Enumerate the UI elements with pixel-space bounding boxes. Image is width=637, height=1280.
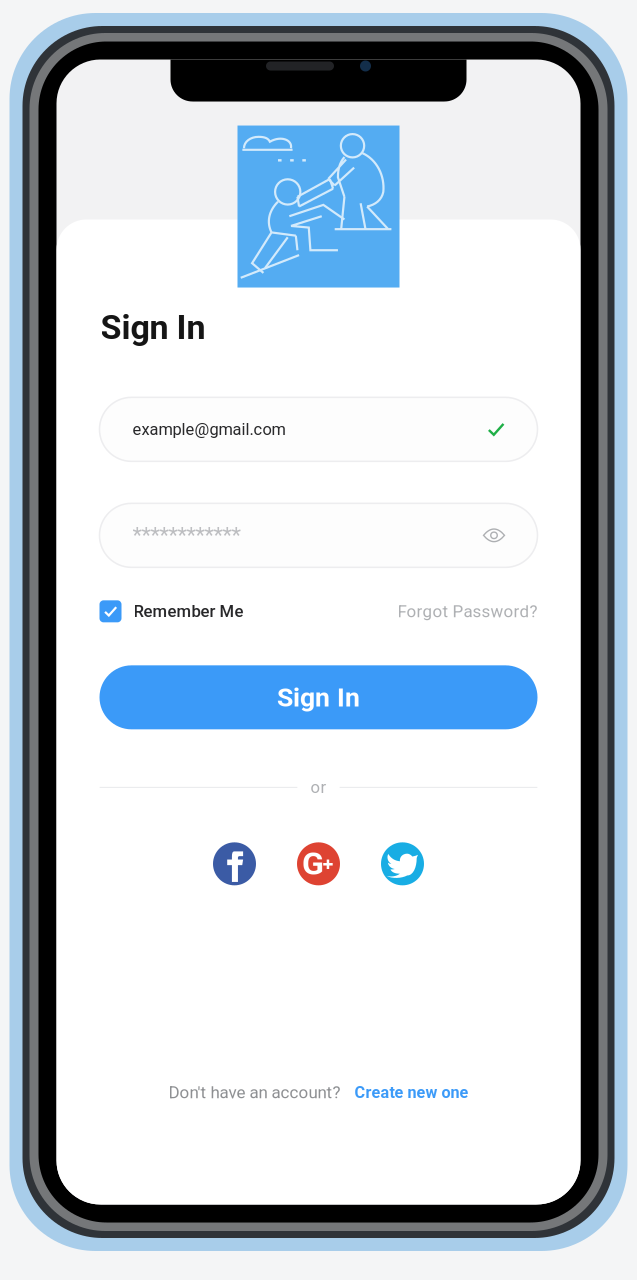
staticText: Sign In: [100, 307, 205, 347]
staticText: Forgot Password?: [397, 601, 537, 621]
staticText: or: [310, 778, 326, 797]
staticText: Remember Me: [133, 602, 243, 621]
button[interactable]: Sign in with Google: [297, 842, 340, 885]
button[interactable]: ************: [56, 503, 537, 567]
button[interactable]: Forgot Password?: [397, 601, 537, 621]
button[interactable]: Sign in with Facebook: [213, 842, 256, 885]
button[interactable]: Create new one: [354, 1083, 468, 1102]
button[interactable]: Sign In: [99, 665, 537, 729]
staticText: Create new one: [354, 1083, 468, 1102]
staticText: G: [302, 845, 324, 882]
staticText: ************: [132, 522, 240, 548]
button[interactable]: example@gmail.com: [56, 397, 537, 461]
button[interactable]: Remember Me: [99, 600, 243, 622]
button[interactable]: Sign in with Twitter: [381, 842, 424, 885]
staticText: Don't have an account?: [168, 1083, 340, 1102]
staticText: example@gmail.com: [132, 420, 285, 439]
staticText: Sign In: [277, 682, 360, 713]
